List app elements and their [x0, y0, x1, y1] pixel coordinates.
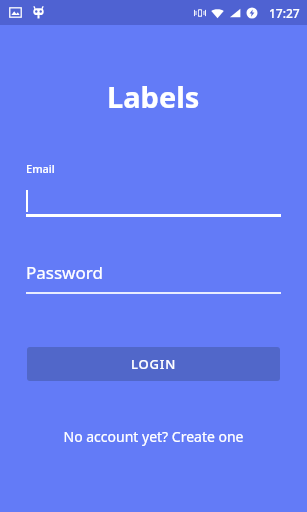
staticText: Password	[26, 261, 103, 284]
staticText: LOGIN	[131, 355, 177, 373]
button[interactable]: Email	[0, 161, 307, 217]
button[interactable]: LOGIN	[27, 347, 280, 381]
staticText: 17:27	[269, 5, 300, 21]
staticText: No account yet? Create one	[63, 427, 244, 446]
button[interactable]: Password	[0, 261, 307, 294]
staticText: Email	[26, 161, 55, 176]
button[interactable]: No account yet? Create one	[53, 421, 254, 452]
staticText: Labels	[107, 77, 200, 116]
